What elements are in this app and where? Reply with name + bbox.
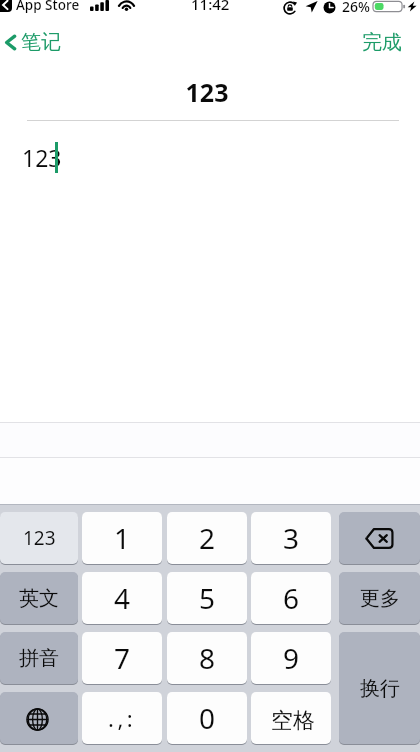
button[interactable]: 7 <box>82 632 162 684</box>
staticText: 4 <box>114 579 131 617</box>
button[interactable]: 9 <box>251 632 331 684</box>
staticText: 0 <box>199 699 216 737</box>
staticText: 换行 <box>360 676 400 701</box>
button[interactable]: 5 <box>167 572 247 624</box>
staticText: 更多 <box>360 586 400 611</box>
button[interactable]: 换行 <box>339 632 420 744</box>
button[interactable]: 3 <box>251 512 331 564</box>
button[interactable]: Switch keyboard <box>0 692 78 744</box>
staticText: 123 <box>23 525 56 551</box>
button[interactable]: 空格 <box>251 692 331 744</box>
button[interactable]: 完成 <box>350 25 420 60</box>
staticText: 笔记 <box>21 30 61 55</box>
button[interactable]: 0 <box>167 692 247 744</box>
button[interactable]: 1 <box>82 512 162 564</box>
staticText: 11:42 <box>191 0 230 14</box>
staticText: 123 <box>22 142 62 173</box>
button[interactable]: 123 <box>0 512 78 564</box>
staticText: .,: <box>108 703 137 733</box>
button[interactable]: 4 <box>82 572 162 624</box>
button[interactable]: 笔记 <box>0 25 71 60</box>
staticText: 123 <box>0 75 417 109</box>
button[interactable]: Backspace <box>339 512 420 564</box>
staticText: 完成 <box>362 30 402 55</box>
staticText: 7 <box>114 639 131 677</box>
button[interactable]: 2 <box>167 512 247 564</box>
button[interactable]: 6 <box>251 572 331 624</box>
staticText: 26% <box>342 0 370 16</box>
staticText: 6 <box>283 579 300 617</box>
staticText: 5 <box>199 579 216 617</box>
staticText: App Store <box>16 0 80 14</box>
staticText: 空格 <box>271 707 315 735</box>
staticText: 拼音 <box>19 646 59 671</box>
button[interactable]: 英文 <box>0 572 78 624</box>
staticText: 9 <box>283 639 300 677</box>
staticText: 2 <box>199 519 216 557</box>
button[interactable]: 拼音 <box>0 632 78 684</box>
staticText: 英文 <box>19 586 59 611</box>
staticText: 1 <box>114 519 131 557</box>
button[interactable]: 更多 <box>339 572 420 624</box>
staticText: 3 <box>283 519 300 557</box>
button[interactable]: 8 <box>167 632 247 684</box>
staticText: 8 <box>199 639 216 677</box>
button[interactable]: .,: <box>82 692 162 744</box>
